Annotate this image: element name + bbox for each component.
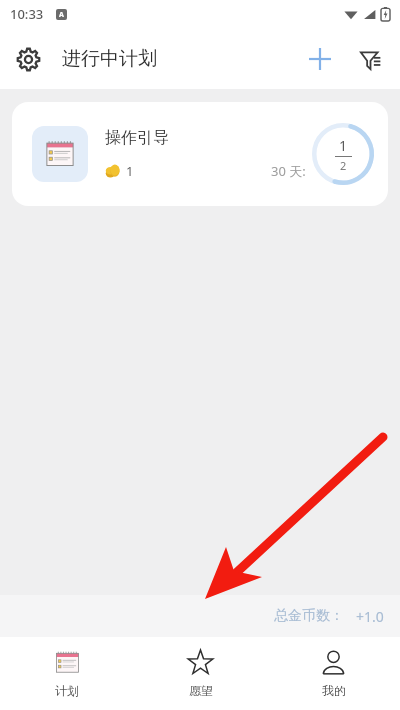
button[interactable]: Filter bbox=[350, 39, 390, 79]
staticText: 操作引导 bbox=[105, 128, 169, 148]
button[interactable]: 愿望 bbox=[134, 637, 267, 710]
button[interactable]: 操作引导 bbox=[12, 102, 388, 206]
button[interactable]: 我的 bbox=[267, 637, 400, 710]
button[interactable]: 计划 bbox=[0, 637, 134, 710]
staticText: 2 bbox=[340, 158, 347, 173]
staticText: 10:33 bbox=[10, 5, 44, 23]
staticText: A bbox=[59, 10, 64, 20]
staticText: 1 bbox=[339, 136, 348, 155]
staticText: 我的 bbox=[322, 683, 346, 698]
button[interactable]: Settings bbox=[8, 39, 48, 79]
button[interactable]: Add bbox=[298, 37, 342, 81]
staticText: 计划 bbox=[55, 683, 79, 698]
staticText: 30 天: bbox=[271, 162, 306, 180]
staticText: 总金币数： bbox=[274, 607, 344, 625]
staticText: 愿望 bbox=[189, 683, 213, 698]
staticText: +1.0 bbox=[356, 607, 384, 626]
staticText: 进行中计划 bbox=[62, 47, 157, 71]
staticText: 1 bbox=[126, 162, 134, 180]
